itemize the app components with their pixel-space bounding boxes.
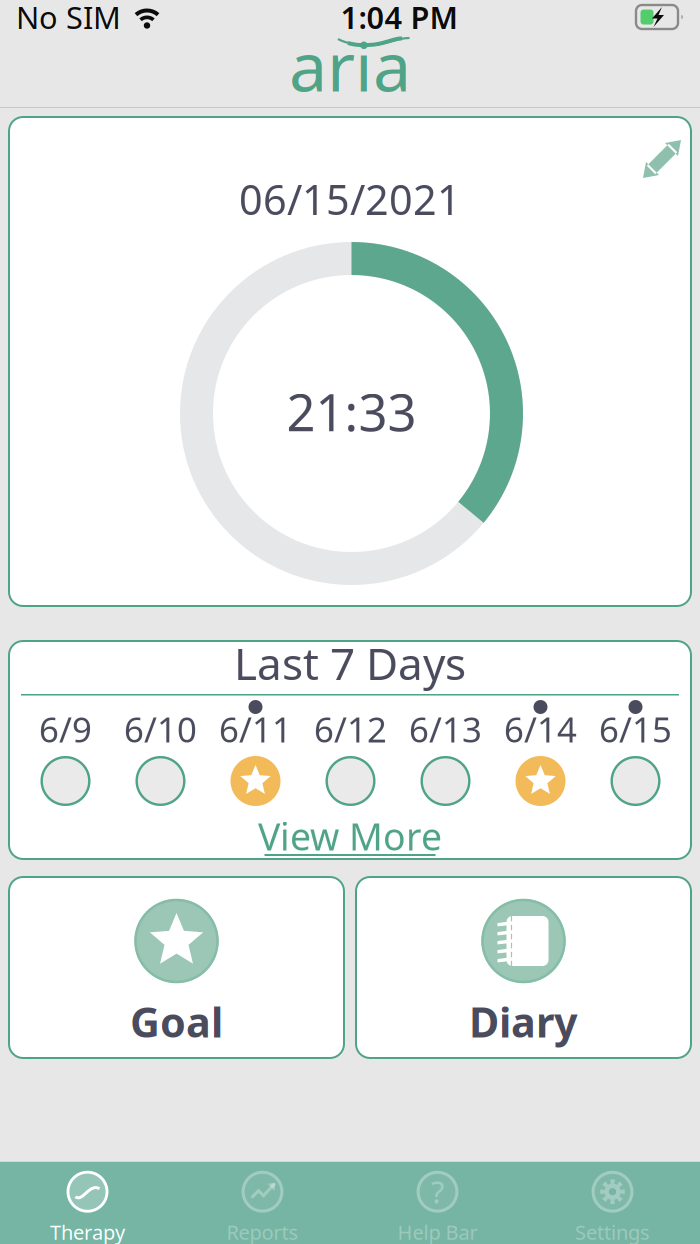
staticText: 6/13 [409, 706, 482, 752]
button[interactable]: ? [350, 1161, 525, 1244]
staticText: 6/9 [39, 706, 92, 752]
staticText: 06/15/2021 [239, 172, 461, 226]
staticText: 6/12 [314, 706, 387, 752]
staticText: 6/11 [219, 706, 292, 752]
staticText: 6/15 [599, 706, 672, 752]
staticText: 21:33 [286, 378, 416, 445]
button[interactable]: Diary [356, 877, 691, 1058]
staticText: 6/10 [124, 706, 197, 752]
button[interactable]: Goal [9, 877, 344, 1058]
staticText: aria [289, 20, 411, 110]
button[interactable]: View More [9, 817, 691, 857]
staticText: No SIM [16, 0, 121, 37]
staticText: ? [431, 1171, 444, 1212]
staticText: Help Bar [397, 1219, 477, 1244]
staticText: View More [258, 811, 442, 861]
staticText: Therapy [50, 1219, 125, 1244]
button[interactable]: Expand [633, 130, 691, 188]
staticText: Reports [226, 1219, 298, 1244]
staticText: 1:04 PM [340, 0, 457, 37]
staticText: Diary [469, 994, 578, 1049]
button[interactable]: Therapy [0, 1161, 175, 1244]
staticText: Goal [130, 994, 223, 1049]
staticText: Last 7 Days [234, 634, 466, 692]
staticText: 6/14 [504, 706, 577, 752]
staticText: Settings [575, 1219, 650, 1244]
button[interactable]: Reports [175, 1161, 350, 1244]
button[interactable]: Settings [525, 1161, 700, 1244]
